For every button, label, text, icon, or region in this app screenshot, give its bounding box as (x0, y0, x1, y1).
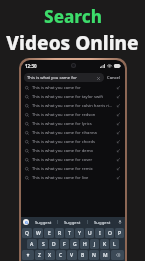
button[interactable]: Insert suggestion (116, 175, 121, 180)
button[interactable]: This is what you came for demo (21, 146, 125, 155)
staticText: Cancel (107, 75, 121, 81)
button[interactable]: C (56, 250, 66, 260)
button[interactable]: Q (22, 228, 32, 238)
staticText: O (108, 230, 112, 237)
button[interactable]: F (60, 239, 69, 249)
button[interactable]: Google (23, 219, 29, 225)
staticText: J (94, 241, 96, 248)
staticText: This is what you came for calvin harris … (32, 103, 114, 109)
staticText: K (103, 241, 107, 248)
button[interactable]: Suggest (29, 217, 57, 227)
button[interactable]: Insert suggestion (116, 166, 121, 171)
button[interactable]: This is what you came for chords (21, 137, 125, 146)
staticText: This is what you came for (32, 85, 114, 91)
button[interactable]: V (67, 250, 77, 260)
button[interactable]: H (80, 239, 89, 249)
button[interactable]: This is what you came for rihanna (21, 128, 125, 137)
button[interactable]: G (70, 239, 79, 249)
staticText: This is what you came for chords (32, 139, 114, 145)
staticText: This is what you came for demo (32, 148, 114, 154)
button[interactable]: E (44, 228, 54, 238)
staticText: N (92, 252, 96, 259)
button[interactable]: Insert suggestion (116, 103, 121, 108)
button[interactable]: Insert suggestion (116, 157, 121, 162)
staticText: Search (44, 5, 102, 28)
button[interactable]: This is what you came for (21, 83, 125, 92)
button[interactable]: Insert suggestion (116, 130, 121, 135)
button[interactable]: X (45, 250, 55, 260)
button[interactable]: S (38, 239, 48, 249)
button[interactable]: U (85, 228, 94, 238)
staticText: This is what you came for cover (32, 157, 114, 163)
staticText: 12:30 (25, 63, 37, 69)
button[interactable]: Insert suggestion (116, 112, 121, 117)
button[interactable]: This is what you came for lyrics (21, 119, 125, 128)
staticText: E (48, 230, 51, 237)
staticText: P (118, 230, 122, 237)
button[interactable]: Suggest (58, 217, 87, 227)
staticText: A (30, 241, 34, 248)
staticText: L (113, 241, 116, 248)
button[interactable]: Insert suggestion (116, 148, 121, 153)
staticText: Q (25, 230, 29, 237)
button[interactable]: Insert suggestion (116, 139, 121, 144)
staticText: This is what you came for remix (32, 166, 114, 172)
button[interactable]: B (78, 250, 88, 260)
staticText: H (83, 241, 87, 248)
button[interactable]: This is what you came for remix (21, 164, 125, 173)
staticText: T (68, 230, 71, 237)
button[interactable]: Z (35, 250, 44, 260)
button[interactable]: O (105, 228, 114, 238)
button[interactable]: W (33, 228, 43, 238)
button[interactable]: This is what you came for (24, 73, 104, 82)
staticText: This is what you came for redson (32, 112, 114, 118)
staticText: D (52, 241, 56, 248)
button[interactable]: J (90, 239, 99, 249)
button[interactable]: Suggest (88, 217, 117, 227)
staticText: X (48, 252, 52, 259)
staticText: I (99, 230, 101, 237)
button[interactable]: P (115, 228, 124, 238)
staticText: C (59, 252, 63, 259)
staticText: R (58, 230, 62, 237)
button[interactable]: D (49, 239, 59, 249)
button[interactable]: This is what you came for redson (21, 110, 125, 119)
button[interactable]: Backspace (111, 250, 124, 260)
button[interactable]: Clear search (95, 75, 101, 81)
button[interactable]: L (110, 239, 119, 249)
button[interactable]: A (27, 239, 37, 249)
staticText: This is what you came for rihanna (32, 130, 114, 136)
staticText: Y (78, 230, 81, 237)
button[interactable]: R (55, 228, 64, 238)
button[interactable]: Insert suggestion (116, 121, 121, 126)
button[interactable]: Cancel (106, 73, 122, 82)
button[interactable]: K (100, 239, 109, 249)
button[interactable]: This is what you came for cover (21, 155, 125, 164)
staticText: S (42, 241, 45, 248)
button[interactable]: I (95, 228, 104, 238)
button[interactable]: M (100, 250, 110, 260)
staticText: Suggest (35, 219, 52, 225)
button[interactable]: Y (75, 228, 84, 238)
button[interactable]: Voice input (117, 219, 123, 225)
button[interactable]: Insert suggestion (116, 94, 121, 99)
staticText: This is what you came for live (32, 175, 114, 181)
button[interactable]: Insert suggestion (116, 85, 121, 90)
staticText: This is what you came for taylor swift (32, 94, 114, 100)
button[interactable]: This is what you came for calvin harris … (21, 101, 125, 110)
button[interactable]: This is what you came for live (21, 173, 125, 182)
button[interactable]: Shift (22, 250, 34, 260)
staticText: Videos Online (6, 30, 139, 56)
staticText: V (70, 252, 74, 259)
staticText: B (81, 252, 85, 259)
button[interactable]: This is what you came for taylor swift (21, 92, 125, 101)
button[interactable]: T (65, 228, 74, 238)
staticText: F (63, 241, 66, 248)
button[interactable]: N (89, 250, 99, 260)
staticText: This is what you came for lyrics (32, 121, 114, 127)
staticText: U (88, 230, 92, 237)
staticText: G (73, 241, 77, 248)
staticText: M (103, 252, 108, 259)
staticText: W (36, 230, 41, 237)
staticText: Suggest (94, 219, 111, 225)
